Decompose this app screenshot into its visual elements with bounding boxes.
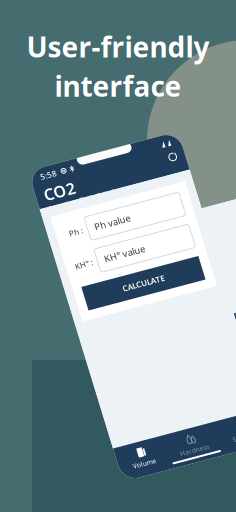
button[interactable]: CALCULATE	[45, 297, 166, 321]
button[interactable]: Hardness	[80, 466, 131, 488]
staticText: User-friendly	[26, 28, 209, 65]
staticText: KH° value	[75, 269, 117, 282]
staticText: CO2	[36, 188, 68, 209]
staticText: interface	[54, 67, 181, 104]
staticText: Ph value	[75, 236, 112, 248]
staticText: Ph :	[49, 237, 63, 247]
staticText: 5:58	[38, 175, 55, 185]
button[interactable]: Refresh	[166, 188, 175, 199]
staticText: KH° :	[45, 270, 63, 281]
button[interactable]: Settings	[131, 466, 183, 488]
button[interactable]: Volume	[28, 466, 80, 488]
staticText: Aquarium Tank Calculator	[36, 208, 118, 217]
staticText: CALCULATE	[84, 304, 127, 314]
